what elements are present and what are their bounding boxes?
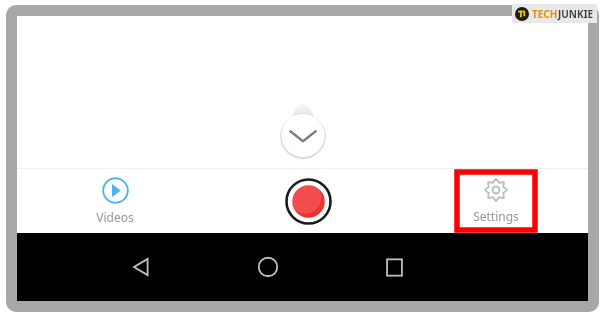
staticText: Videos xyxy=(96,209,134,225)
staticText: Settings xyxy=(473,208,519,224)
button[interactable]: Home xyxy=(204,233,331,301)
button[interactable]: Record xyxy=(213,169,404,233)
staticText: TECH xyxy=(532,7,558,21)
button[interactable]: Settings xyxy=(457,172,535,230)
button[interactable]: Videos xyxy=(17,169,213,233)
button[interactable]: Expand controls xyxy=(280,101,326,153)
button[interactable]: Back xyxy=(77,233,204,301)
staticText: JUNKIE xyxy=(558,7,594,21)
button[interactable]: Recent apps xyxy=(331,233,458,301)
